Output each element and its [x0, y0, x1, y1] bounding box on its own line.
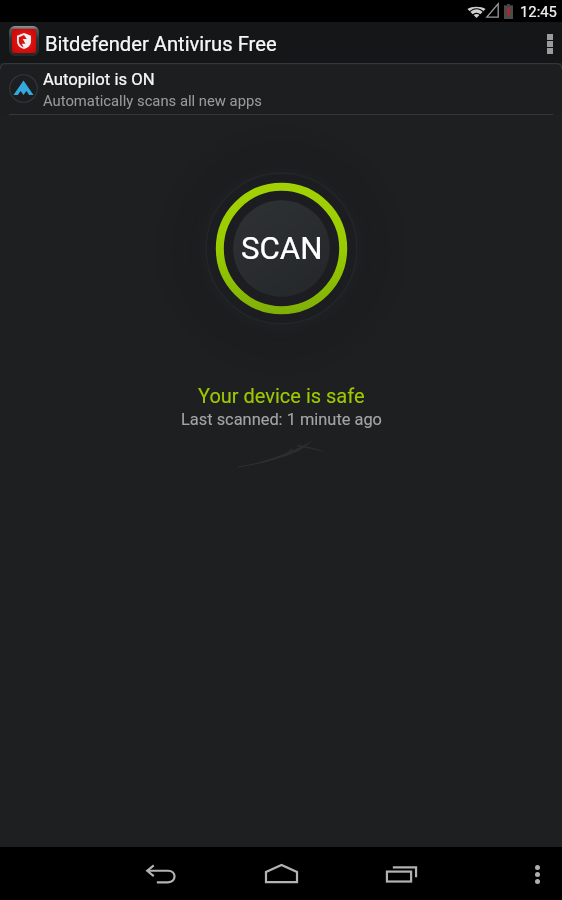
button[interactable]: SCAN	[203, 170, 360, 327]
staticText: SCAN	[241, 230, 323, 267]
staticText: Last scanned: 1 minute ago	[181, 410, 382, 429]
staticText: Bitdefender Antivirus Free	[45, 32, 277, 56]
button[interactable]: Recent apps	[371, 847, 431, 900]
button[interactable]: More options	[521, 22, 562, 63]
button[interactable]: Home	[251, 847, 311, 900]
staticText: Autopilot is ON	[43, 70, 155, 90]
staticText: 12:45	[520, 3, 557, 20]
button[interactable]: Menu	[513, 847, 562, 900]
staticText: Automatically scans all new apps	[43, 92, 262, 109]
button[interactable]: Autopilot is ON	[0, 63, 562, 115]
staticText: Your device is safe	[198, 384, 365, 407]
button[interactable]: Back	[131, 847, 191, 900]
